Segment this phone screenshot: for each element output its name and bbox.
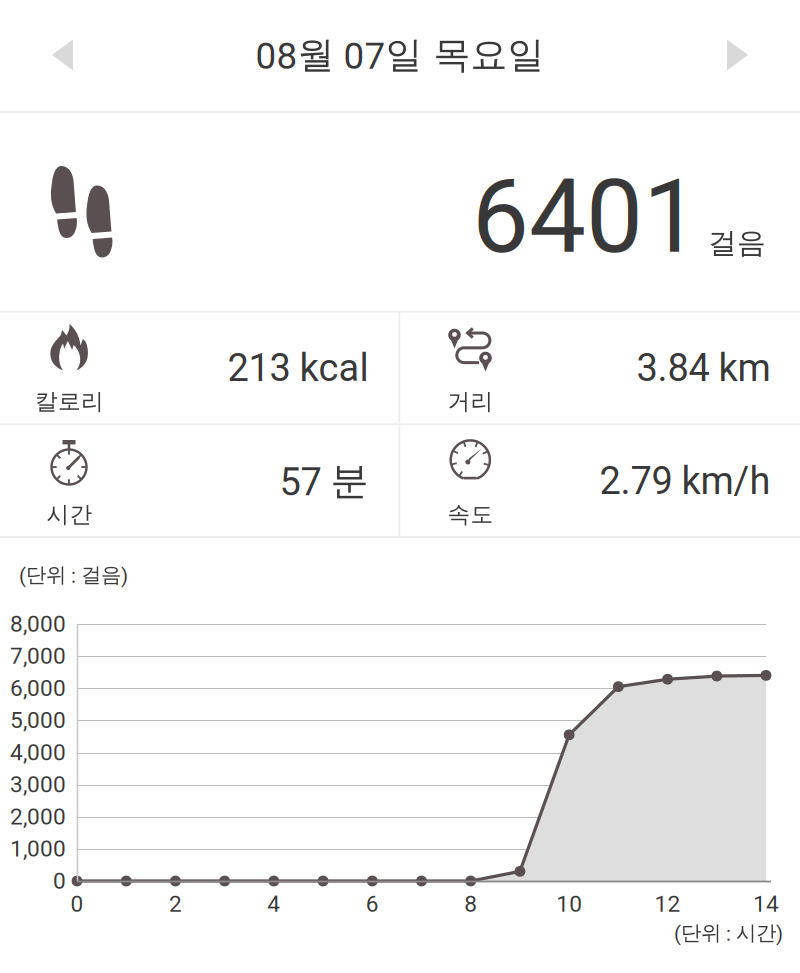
button[interactable]: Previous day (0, 0, 125, 110)
staticText: 걸음 (708, 225, 766, 261)
staticText: 7,000 (10, 643, 66, 669)
staticText: 10 (556, 891, 582, 917)
staticText: 속도 (447, 500, 493, 529)
staticText: 0 (70, 891, 83, 917)
staticText: 57 분 (279, 457, 368, 505)
staticText: 2 (169, 891, 182, 917)
button[interactable]: 칼로리 (0, 312, 398, 423)
staticText: 6,000 (10, 675, 66, 702)
staticText: 4 (267, 891, 280, 917)
staticText: 8,000 (10, 611, 66, 637)
staticText: 213 kcal (227, 346, 368, 390)
button[interactable]: 속도 (400, 425, 800, 536)
staticText: 6 (366, 891, 379, 917)
staticText: 0 (53, 868, 66, 894)
staticText: 08월 07일 목요일 (255, 32, 544, 78)
staticText: 시간 (46, 500, 92, 529)
button[interactable]: 시간 (0, 425, 398, 536)
staticText: (단위 : 시간) (674, 920, 783, 946)
staticText: 1,000 (10, 836, 66, 862)
staticText: 2.79 km/h (599, 459, 770, 503)
staticText: 14 (753, 891, 779, 917)
staticText: 8 (464, 891, 477, 917)
staticText: (단위 : 걸음) (19, 562, 128, 588)
button[interactable]: 거리 (400, 312, 800, 423)
staticText: 2,000 (10, 803, 66, 830)
staticText: 5,000 (10, 707, 66, 734)
staticText: 칼로리 (35, 387, 104, 416)
staticText: 거리 (447, 387, 493, 416)
button[interactable]: Next day (675, 0, 800, 110)
staticText: 12 (655, 891, 681, 917)
staticText: 3,000 (10, 771, 66, 798)
staticText: 6401 (472, 158, 700, 276)
staticText: 4,000 (10, 739, 66, 766)
staticText: 3.84 km (636, 346, 770, 390)
